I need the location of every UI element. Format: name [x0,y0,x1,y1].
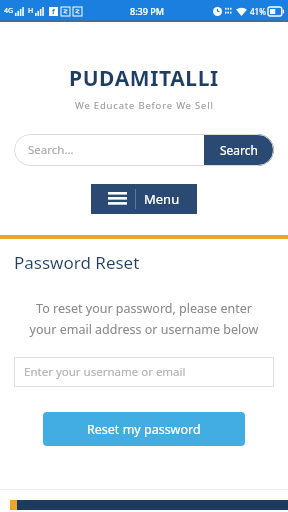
staticText: Search... [28,142,74,158]
staticText: 41% [250,6,266,17]
staticText: Menu [144,190,180,208]
staticText: Reset my password [87,421,201,438]
staticText: PUDAMITALLI [69,64,219,93]
staticText: Search [220,142,258,158]
button[interactable]: Reset my password [43,412,245,446]
button[interactable]: Enter your username or email [14,357,274,387]
staticText: To reset your password, please enter you… [12,300,276,337]
button[interactable]: Open menu [91,184,197,214]
staticText: We Educate Before We Sell [75,99,214,112]
staticText: 4G [4,6,14,16]
button[interactable]: Search [204,134,274,166]
staticText: 8:39 PM [130,5,164,17]
staticText: H [28,6,34,16]
staticText: Enter your username or email [24,364,186,380]
other: Open menu [108,192,127,206]
button[interactable]: Search... [14,134,204,166]
staticText: f [52,7,55,16]
staticText: Password Reset [14,251,140,274]
